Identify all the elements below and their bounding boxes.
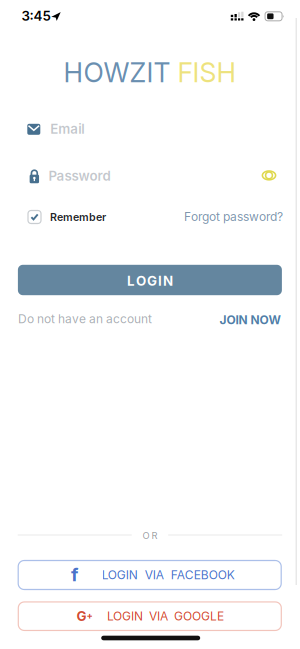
button[interactable]: JOIN NOW	[219, 313, 280, 327]
button[interactable]: Remember	[28, 206, 106, 228]
staticText: L O G I N	[127, 273, 173, 289]
staticText: O R	[142, 530, 157, 541]
staticText: FISH	[177, 57, 236, 88]
button[interactable]: Show password	[257, 164, 281, 186]
staticText: G+	[76, 608, 92, 624]
staticText: f	[71, 563, 78, 585]
staticText: Do not have an account	[18, 312, 152, 326]
button[interactable]: L O G I N	[18, 265, 282, 295]
staticText: LOGIN VIA FACEBOOK	[102, 568, 235, 582]
button[interactable]: Email	[27, 117, 291, 141]
button[interactable]: f	[18, 560, 281, 589]
staticText: Password	[49, 168, 111, 184]
staticText: HOWZIT	[63, 57, 177, 88]
staticText: 3:45	[21, 8, 50, 24]
staticText: JOIN NOW	[219, 313, 280, 327]
staticText: Email	[50, 121, 84, 137]
staticText: Remember	[50, 211, 106, 223]
staticText: LOGIN VIA GOOGLE	[107, 609, 224, 623]
button[interactable]: Forgot password?	[184, 209, 283, 224]
button[interactable]: G+	[18, 602, 281, 630]
button[interactable]: Password	[29, 164, 264, 188]
staticText: Forgot password?	[184, 209, 283, 224]
